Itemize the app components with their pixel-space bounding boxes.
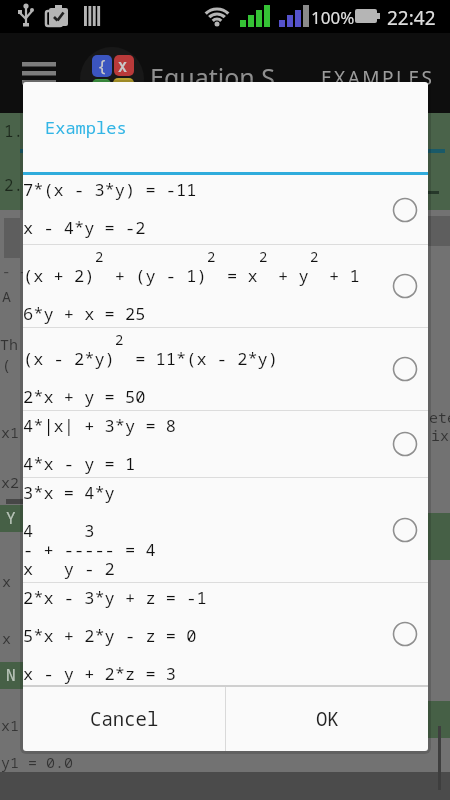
staticText: (x + 2) + (y - 1) = x + y + 1 6*y + x = … bbox=[23, 264, 360, 325]
staticText: 2. bbox=[4, 174, 24, 196]
staticText: { bbox=[97, 54, 108, 77]
staticText: 2 bbox=[259, 247, 268, 266]
staticText: x2 bbox=[1, 472, 20, 492]
staticText: x1 bbox=[1, 422, 20, 442]
staticText: 4*|x| + 3*y = 8 4*x - y = 1 bbox=[23, 414, 176, 475]
button[interactable]: 4*|x| + 3*y = 8 4*x - y = 1 bbox=[23, 411, 428, 477]
staticText: Th bbox=[0, 334, 19, 354]
staticText: x bbox=[2, 571, 12, 591]
staticText: 2*x - 3*y + z = -1 5*x + 2*y - z = 0 x -… bbox=[23, 586, 207, 685]
staticText: 2 bbox=[115, 330, 124, 349]
staticText: Examples bbox=[45, 116, 127, 139]
staticText: 2 bbox=[95, 247, 104, 266]
button[interactable]: 2 bbox=[23, 245, 428, 327]
staticText: x1 bbox=[1, 715, 20, 735]
staticText: A bbox=[2, 286, 12, 306]
staticText: 22:42 bbox=[387, 5, 436, 31]
staticText: (x - 2*y) = 11*(x - 2*y) 2*x + y = 50 bbox=[23, 347, 278, 408]
staticText: x bbox=[2, 628, 12, 648]
button[interactable]: OK bbox=[226, 687, 428, 751]
staticText: N bbox=[6, 664, 16, 686]
button[interactable]: 2*x - 3*y + z = -1 5*x + 2*y - z = 0 x -… bbox=[23, 583, 428, 685]
staticText: 2 bbox=[310, 247, 319, 266]
staticText: ix bbox=[431, 425, 450, 445]
staticText: OK bbox=[316, 706, 339, 732]
staticText: EXAMPLES bbox=[321, 65, 435, 91]
staticText: 100% bbox=[311, 6, 355, 29]
staticText: Equation S bbox=[150, 60, 276, 94]
staticText: Cancel bbox=[90, 706, 159, 732]
staticText: - - bbox=[2, 262, 28, 281]
staticText: ( bbox=[2, 354, 12, 374]
staticText: 3*x = 4*y 4 3 - + ----- = 4 x y - 2 bbox=[23, 481, 156, 580]
staticText: y1 = 0.0 bbox=[1, 752, 74, 772]
button[interactable]: 2 bbox=[23, 328, 428, 410]
button[interactable]: 7*(x - 3*y) = -11 x - 4*y = -2 bbox=[23, 175, 428, 244]
button[interactable]: Cancel bbox=[23, 687, 225, 751]
staticText: Y bbox=[6, 507, 16, 529]
staticText: 1. bbox=[4, 120, 24, 142]
button[interactable]: 3*x = 4*y 4 3 - + ----- = 4 x y - 2 bbox=[23, 478, 428, 582]
staticText: X bbox=[118, 56, 128, 76]
staticText: ete bbox=[429, 407, 450, 427]
staticText: 2 bbox=[207, 247, 216, 266]
staticText: 7*(x - 3*y) = -11 x - 4*y = -2 bbox=[23, 178, 197, 239]
